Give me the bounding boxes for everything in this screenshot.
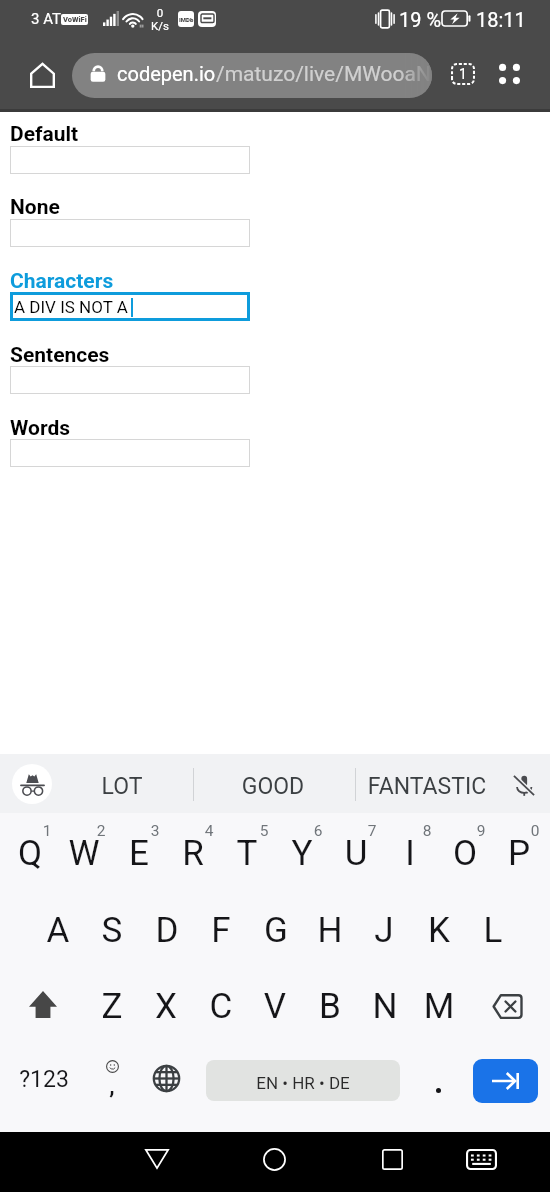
button[interactable]: Recent apps — [367, 1134, 417, 1184]
staticText: A — [28, 910, 88, 951]
staticText: 4 — [194, 822, 224, 840]
button[interactable] — [193, 969, 248, 1047]
button[interactable] — [383, 813, 438, 891]
staticText: Q — [0, 833, 60, 874]
button[interactable] — [85, 891, 140, 969]
button[interactable]: Home — [249, 1134, 299, 1184]
button[interactable] — [357, 969, 412, 1047]
staticText: , — [97, 1074, 127, 1100]
staticText: 5 — [249, 822, 279, 840]
staticText: 3 AT — [16, 10, 76, 28]
staticText: 18:11 — [476, 8, 526, 31]
staticText: Words — [10, 416, 71, 441]
button[interactable] — [57, 813, 112, 891]
staticText: W — [54, 833, 114, 874]
button[interactable] — [139, 891, 194, 969]
staticText: S — [82, 910, 142, 951]
button[interactable] — [194, 891, 249, 969]
button[interactable] — [10, 219, 250, 247]
button[interactable] — [302, 969, 357, 1047]
button[interactable] — [248, 891, 303, 969]
staticText: O — [435, 833, 495, 874]
staticText: Sentences — [10, 343, 110, 368]
staticText: F — [191, 910, 251, 951]
staticText: LOT — [22, 773, 222, 800]
staticText: ?123 — [14, 1066, 74, 1093]
button[interactable]: A DIV IS NOT A — [10, 292, 250, 321]
staticText: 8 — [412, 822, 442, 840]
button[interactable]: Home — [22, 55, 62, 95]
staticText: Default — [10, 122, 79, 147]
button[interactable] — [412, 969, 467, 1047]
button[interactable] — [411, 891, 466, 969]
button[interactable]: More options — [489, 54, 529, 94]
staticText: 9 — [466, 822, 496, 840]
button[interactable]: Change keyboard language — [139, 1039, 193, 1117]
staticText: Characters — [10, 269, 114, 294]
staticText: V — [245, 986, 305, 1027]
staticText: FANTASTIC — [327, 773, 527, 800]
staticText: K — [409, 910, 469, 951]
staticText: K/s — [140, 19, 180, 32]
button[interactable] — [84, 969, 139, 1047]
staticText: codepen.io — [117, 62, 216, 85]
button[interactable] — [31, 891, 86, 969]
staticText: J — [354, 910, 414, 951]
button[interactable] — [274, 813, 329, 891]
button[interactable]: Hide keyboard — [456, 1134, 506, 1184]
button[interactable] — [10, 439, 250, 467]
button[interactable] — [3, 813, 58, 891]
button[interactable]: codepen.io — [72, 53, 432, 98]
button[interactable]: Backspace — [479, 967, 535, 1045]
button[interactable] — [220, 813, 275, 891]
button[interactable] — [466, 891, 521, 969]
staticText: 0 — [520, 822, 550, 840]
staticText: 0 — [140, 6, 180, 19]
staticText: B — [300, 986, 360, 1027]
staticText: Y — [272, 833, 332, 874]
button[interactable] — [248, 969, 303, 1047]
button[interactable]: Tabs — [443, 54, 483, 94]
staticText: GOOD — [173, 773, 373, 800]
button[interactable]: Shift — [15, 965, 71, 1043]
staticText: E — [109, 833, 169, 874]
staticText: A DIV IS NOT A — [14, 297, 128, 317]
button[interactable] — [328, 813, 383, 891]
button[interactable] — [111, 813, 166, 891]
staticText: 7 — [357, 822, 387, 840]
button[interactable]: ?123 — [14, 1047, 74, 1125]
button[interactable]: Incognito mode — [12, 764, 52, 804]
staticText: P — [489, 833, 549, 874]
staticText: None — [10, 195, 60, 220]
button[interactable] — [437, 813, 492, 891]
staticText: H — [300, 910, 360, 951]
button[interactable] — [412, 1047, 464, 1125]
button[interactable] — [10, 146, 250, 174]
button[interactable] — [165, 813, 220, 891]
button[interactable] — [357, 891, 412, 969]
staticText: G — [246, 910, 306, 951]
staticText: EN • HR • DE — [223, 1073, 383, 1093]
staticText: 2 — [86, 822, 116, 840]
button[interactable] — [491, 813, 546, 891]
button[interactable] — [303, 891, 358, 969]
staticText: 3 — [140, 822, 170, 840]
staticText: 1 — [459, 66, 467, 82]
button[interactable]: EN • HR • DE — [206, 1060, 400, 1101]
staticText: M — [409, 986, 469, 1027]
staticText: 6 — [303, 822, 333, 840]
button[interactable]: Enter — [473, 1059, 538, 1103]
button[interactable] — [139, 969, 194, 1047]
staticText: VoWiFi — [63, 15, 87, 24]
button[interactable]: Voice input disabled — [506, 767, 542, 803]
staticText: IMDb — [179, 16, 194, 23]
staticText: D — [137, 910, 197, 951]
staticText: I — [380, 833, 440, 874]
staticText: /matuzo/live/MWooaN — [216, 62, 431, 87]
staticText: X — [136, 986, 196, 1027]
staticText: 1 — [32, 822, 62, 840]
button[interactable]: Emoji and comma — [84, 1047, 140, 1125]
button[interactable]: Back — [132, 1134, 182, 1184]
staticText: 19 % — [399, 8, 442, 31]
button[interactable] — [10, 366, 250, 394]
